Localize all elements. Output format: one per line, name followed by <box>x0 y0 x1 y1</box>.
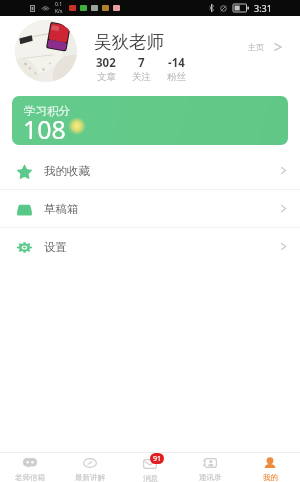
staticText: 草稿箱 <box>44 202 79 216</box>
button[interactable]: 草稿箱 <box>0 190 300 227</box>
staticText: 302 <box>96 55 116 71</box>
staticText: 消息 <box>143 474 158 482</box>
staticText: 吴狄老师 <box>94 31 164 53</box>
button[interactable]: 通讯录 <box>180 453 240 482</box>
staticText: 学习积分 <box>24 104 70 118</box>
staticText: 0.1 <box>55 1 63 8</box>
button[interactable]: 主页 <box>242 36 294 58</box>
button[interactable]: 我的收藏 <box>0 152 300 189</box>
staticText: 3:31 <box>254 2 272 14</box>
staticText: 7 <box>138 55 145 71</box>
button[interactable]: 头像 <box>15 20 77 82</box>
staticText: 最新讲解 <box>75 473 105 482</box>
button[interactable]: 老师信箱 <box>0 453 60 482</box>
staticText: 粉丝 <box>167 71 186 83</box>
staticText: 主页 <box>248 42 264 52</box>
staticText: 通讯录 <box>199 473 222 482</box>
button[interactable]: 学习积分 <box>12 96 288 145</box>
button[interactable]: 91 <box>120 453 180 482</box>
button[interactable]: 最新讲解 <box>60 453 120 482</box>
staticText: 91 <box>153 454 162 464</box>
staticText: 文章 <box>97 71 116 83</box>
staticText: 我的 <box>263 473 278 482</box>
staticText: 108 <box>23 112 66 145</box>
staticText: -14 <box>168 55 185 71</box>
staticText: K/s <box>55 8 63 15</box>
button[interactable]: 我的 <box>240 453 300 482</box>
staticText: 关注 <box>132 71 151 83</box>
staticText: 我的收藏 <box>44 164 90 178</box>
button[interactable]: 设置 <box>0 228 300 265</box>
staticText: 设置 <box>44 240 67 254</box>
staticText: 老师信箱 <box>15 473 45 482</box>
